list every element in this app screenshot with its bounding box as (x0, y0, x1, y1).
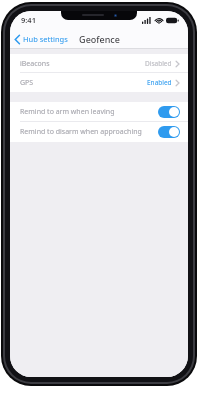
staticText: Enabled (147, 78, 172, 87)
button[interactable]: Remind to arm when leaving (158, 106, 180, 118)
staticText: Remind to arm when leaving (20, 107, 115, 117)
staticText: 9:41 (21, 15, 36, 25)
button[interactable]: Hub settings (10, 29, 188, 49)
staticText: Remind to disarm when approaching (20, 127, 142, 137)
button[interactable]: iBeacons (10, 54, 188, 73)
staticText: iBeacons (20, 59, 50, 69)
staticText: GPS (20, 78, 34, 88)
button[interactable]: Remind to arm when leaving (10, 102, 188, 122)
button[interactable]: Remind to disarm when approaching (10, 122, 188, 142)
staticText: Geofence (79, 33, 120, 45)
staticText: Disabled (145, 59, 172, 68)
staticText: Hub settings (23, 34, 68, 44)
button[interactable]: GPS (10, 73, 188, 92)
button[interactable]: Remind to disarm when approaching (158, 126, 180, 138)
